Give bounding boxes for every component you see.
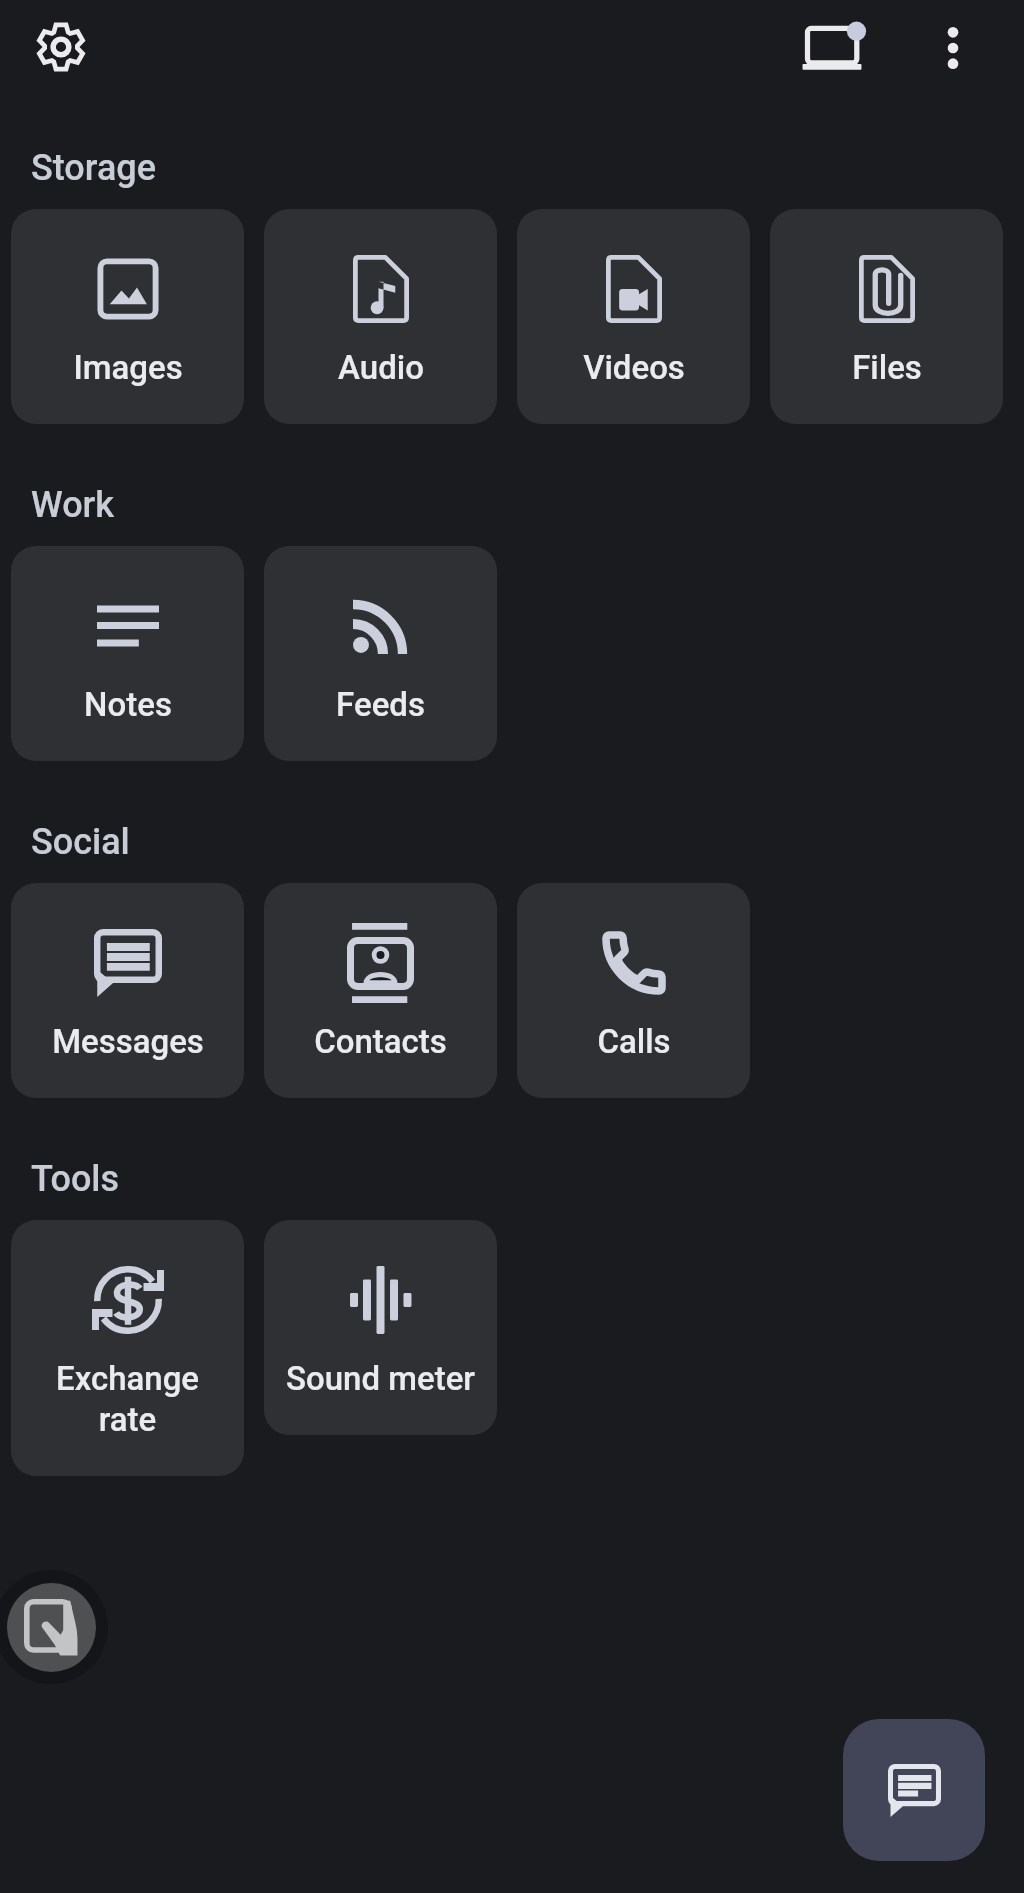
button[interactable]: Calls [517, 883, 750, 1098]
button[interactable]: Files [770, 209, 1003, 424]
button[interactable]: Videos [517, 209, 750, 424]
staticText: Storage [31, 147, 156, 189]
button[interactable]: Messages [11, 883, 244, 1098]
button[interactable]: Feeds [264, 546, 497, 761]
staticText: Tools [31, 1158, 120, 1200]
button[interactable]: Sound meter [264, 1220, 497, 1435]
button[interactable]: Settings [14, 3, 108, 90]
staticText: Files [852, 348, 922, 387]
button[interactable]: New message [843, 1719, 985, 1861]
staticText: Exchange rate [27, 1359, 228, 1439]
button[interactable]: Exchange rate [11, 1220, 244, 1476]
button[interactable]: Accessibility menu [0, 1570, 108, 1684]
staticText: Sound meter [286, 1359, 475, 1398]
staticText: Notes [84, 685, 172, 724]
staticText: Contacts [314, 1022, 447, 1061]
staticText: Feeds [336, 685, 425, 724]
staticText: Audio [338, 348, 424, 387]
button[interactable]: Contacts [264, 883, 497, 1098]
button[interactable]: Notes [11, 546, 244, 761]
staticText: Videos [583, 348, 685, 387]
button[interactable]: Audio [264, 209, 497, 424]
staticText: Calls [597, 1022, 671, 1061]
button[interactable]: Images [11, 209, 244, 424]
button[interactable]: Cast screen [785, 3, 879, 90]
staticText: Work [31, 484, 115, 526]
button[interactable]: More options [906, 4, 1000, 91]
staticText: Messages [52, 1022, 204, 1061]
staticText: Images [73, 348, 183, 387]
staticText: Social [31, 821, 130, 863]
